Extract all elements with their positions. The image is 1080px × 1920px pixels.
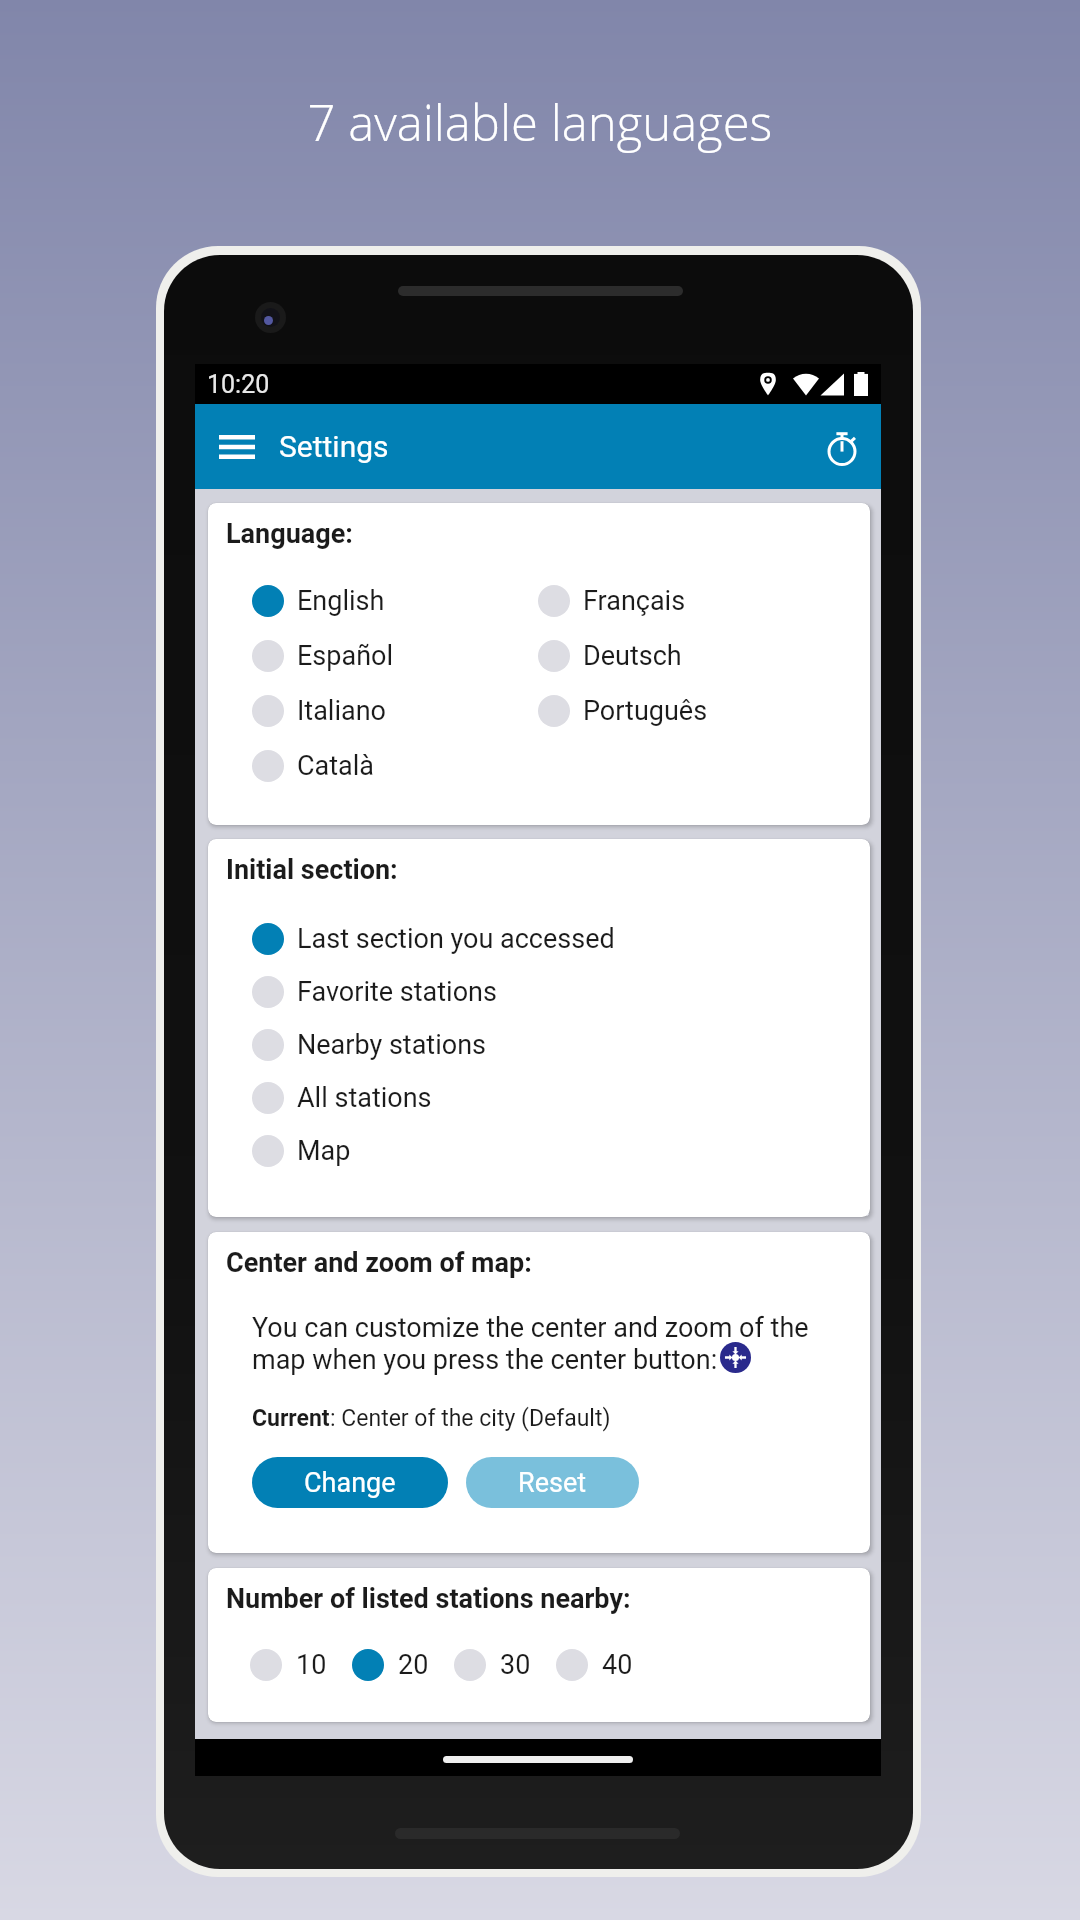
- staticText: Center and zoom of map:: [226, 1247, 532, 1279]
- button[interactable]: Center map: [720, 1342, 751, 1373]
- staticText: Português: [583, 695, 708, 727]
- staticText: Current: [252, 1405, 330, 1432]
- button[interactable]: 40: [556, 1637, 658, 1693]
- button[interactable]: Favorite stations: [252, 965, 870, 1018]
- button[interactable]: 30: [454, 1637, 556, 1693]
- staticText: Español: [297, 640, 394, 672]
- button[interactable]: Map: [252, 1124, 870, 1177]
- staticText: Reset: [518, 1467, 587, 1499]
- button[interactable]: English: [252, 573, 538, 628]
- staticText: 40: [602, 1649, 633, 1681]
- button[interactable]: Change: [252, 1457, 448, 1508]
- staticText: 10: [296, 1649, 327, 1681]
- staticText: 10:20: [207, 370, 270, 399]
- button[interactable]: Open navigation menu: [207, 417, 267, 477]
- staticText: Français: [583, 585, 686, 617]
- staticText: Number of listed stations nearby:: [226, 1583, 631, 1615]
- button[interactable]: Deutsch: [538, 628, 870, 683]
- staticText: Nearby stations: [297, 1029, 486, 1061]
- button[interactable]: Español: [252, 628, 538, 683]
- button[interactable]: Timer: [814, 419, 870, 475]
- staticText: English: [297, 585, 385, 617]
- staticText: 30: [500, 1649, 531, 1681]
- staticText: Català: [297, 750, 375, 782]
- staticText: 7 available languages: [0, 89, 1080, 156]
- staticText: Initial section:: [226, 854, 398, 886]
- staticText: Last section you accessed: [297, 923, 615, 955]
- staticText: 20: [398, 1649, 429, 1681]
- button[interactable]: Català: [252, 738, 538, 793]
- staticText: All stations: [297, 1082, 432, 1114]
- button[interactable]: Nearby stations: [252, 1018, 870, 1071]
- button[interactable]: 20: [352, 1637, 454, 1693]
- button[interactable]: 10: [250, 1637, 352, 1693]
- staticText: Map: [297, 1135, 351, 1167]
- button[interactable]: All stations: [252, 1071, 870, 1124]
- staticText: You can customize the center and zoom of…: [252, 1312, 809, 1376]
- staticText: Italiano: [297, 695, 386, 727]
- button[interactable]: Français: [538, 573, 870, 628]
- staticText: Favorite stations: [297, 976, 497, 1008]
- staticText: Deutsch: [583, 640, 682, 672]
- staticText: Language:: [226, 518, 353, 550]
- button[interactable]: Last section you accessed: [252, 912, 870, 965]
- staticText: : Center of the city (Default): [330, 1405, 611, 1432]
- staticText: Settings: [279, 429, 389, 464]
- button[interactable]: Português: [538, 683, 870, 738]
- button[interactable]: Reset: [466, 1457, 639, 1508]
- staticText: Change: [304, 1467, 396, 1499]
- button[interactable]: Italiano: [252, 683, 538, 738]
